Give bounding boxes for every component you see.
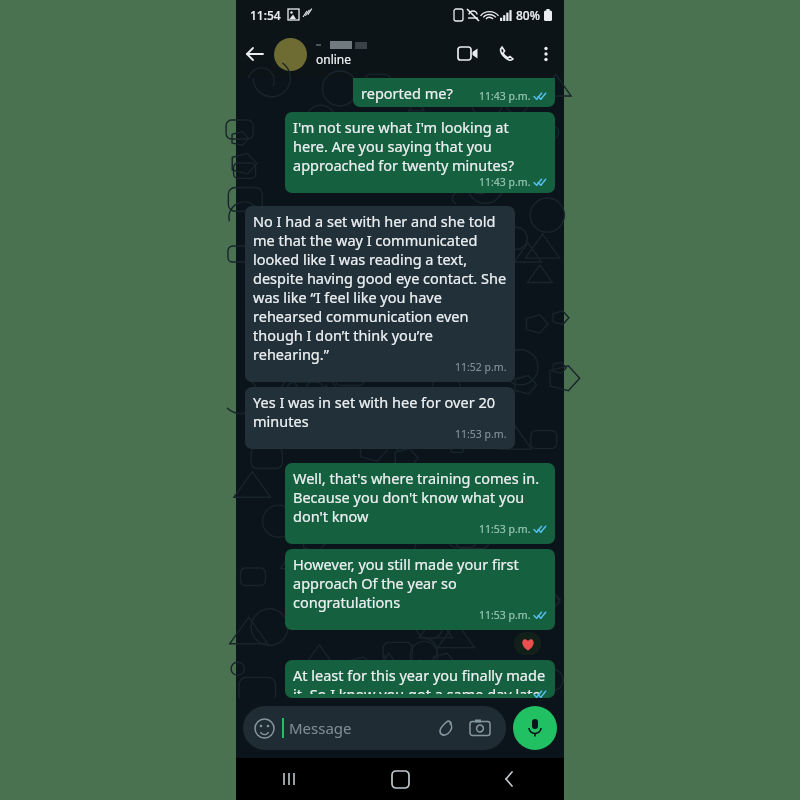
staticText: 11:53 p.m. (455, 427, 507, 441)
staticText: 11:43 p.m. (479, 175, 531, 189)
staticText: online (316, 51, 352, 67)
button[interactable]: Heart reaction (514, 632, 541, 655)
staticText: 11:52 p.m. (455, 360, 507, 374)
staticText: 11:53 p.m. (479, 608, 531, 622)
staticText: reported me? (361, 83, 453, 103)
staticText: Yes I was in set with hee for over 20 mi… (253, 392, 507, 431)
staticText: I'm not sure what I'm looking at here. A… (293, 117, 547, 175)
button[interactable]: Camera (465, 713, 495, 743)
button[interactable]: Back (455, 758, 564, 800)
button[interactable]: Recent apps (236, 758, 346, 800)
button[interactable]: Voice call (488, 34, 528, 74)
button[interactable]: However, you still made your first appro… (285, 549, 555, 630)
staticText: Well, that's where training comes in. Be… (293, 468, 547, 526)
button[interactable]: No I had a set with her and she told me … (245, 206, 515, 382)
staticText: 11:54 (250, 7, 281, 23)
button[interactable]: Video call (448, 34, 488, 74)
staticText: At least for this year you finally made … (293, 665, 547, 694)
button[interactable]: More options (528, 36, 564, 72)
staticText: Message (289, 718, 352, 738)
staticText: No I had a set with her and she told me … (253, 211, 507, 364)
button[interactable]: reported me? (353, 78, 555, 107)
staticText: However, you still made your first appro… (293, 554, 547, 612)
button[interactable]: Well, that's where training comes in. Be… (285, 463, 555, 544)
button[interactable]: Attach (431, 713, 461, 743)
button[interactable]: Yes I was in set with hee for over 20 mi… (245, 387, 515, 449)
staticText: 80% (516, 7, 540, 23)
button[interactable]: Emoji (243, 706, 506, 750)
staticText: 11:53 p.m. (479, 522, 531, 536)
button[interactable]: I'm not sure what I'm looking at here. A… (285, 112, 555, 193)
button[interactable]: Voice message (513, 706, 557, 750)
button[interactable]: Back (236, 35, 274, 73)
other: Emoji (254, 718, 275, 739)
button[interactable]: Home (346, 758, 455, 800)
staticText: 11:43 p.m. (479, 89, 531, 103)
button[interactable]: At least for this year you finally made … (285, 660, 555, 698)
